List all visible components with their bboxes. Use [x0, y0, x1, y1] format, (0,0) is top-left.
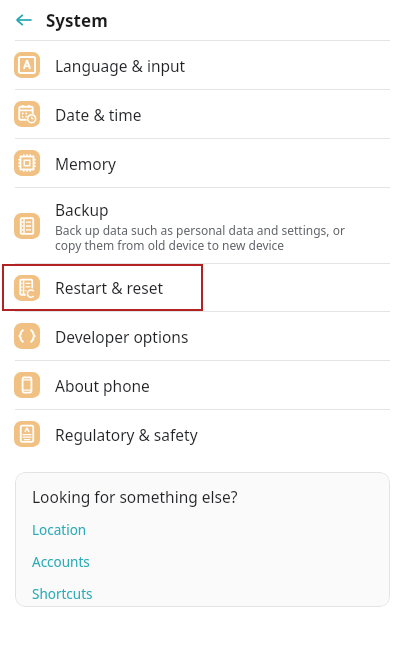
staticText: Backup — [55, 199, 109, 220]
staticText: Regulatory & safety — [55, 424, 198, 445]
button[interactable]: Accounts — [32, 546, 373, 578]
button[interactable]: Language & input — [0, 41, 405, 89]
staticText: Date & time — [55, 104, 142, 125]
staticText: Looking for something else? — [32, 486, 238, 507]
staticText: Shortcuts — [32, 585, 93, 600]
staticText: System — [46, 9, 108, 32]
staticText: Developer options — [55, 326, 189, 347]
button[interactable]: Memory — [0, 139, 405, 187]
staticText: Memory — [55, 153, 116, 174]
staticText: Restart & reset — [55, 277, 164, 298]
button[interactable]: Developer options — [0, 312, 405, 360]
button[interactable]: Shortcuts — [32, 578, 373, 607]
button[interactable]: Backup — [0, 188, 405, 263]
staticText: Language & input — [55, 55, 186, 76]
staticText: Location — [32, 521, 87, 539]
button[interactable]: Regulatory & safety — [0, 410, 405, 458]
button[interactable]: Location — [32, 514, 373, 546]
staticText: About phone — [55, 375, 150, 396]
button[interactable]: Restart & reset — [0, 264, 405, 311]
staticText: Accounts — [32, 553, 90, 571]
button[interactable]: Back — [8, 4, 40, 36]
staticText: Back up data such as personal data and s… — [55, 222, 345, 253]
button[interactable]: Date & time — [0, 90, 405, 138]
button[interactable]: About phone — [0, 361, 405, 409]
